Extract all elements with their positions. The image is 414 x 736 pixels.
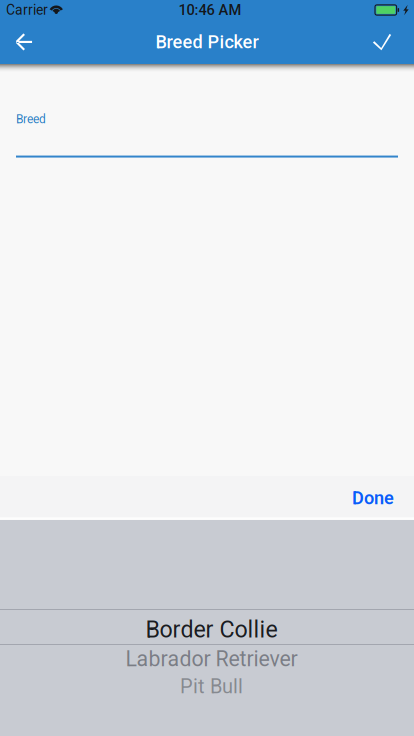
button[interactable]: Done <box>337 476 409 520</box>
button[interactable]: Pit Bull <box>0 673 414 699</box>
staticText: Carrier <box>6 2 48 18</box>
staticText: 10:46 AM <box>178 1 241 19</box>
staticText: Pit Bull <box>180 675 243 698</box>
staticText: Labrador Retriever <box>125 646 297 671</box>
staticText: Breed Picker <box>155 31 258 53</box>
staticText: Border Collie <box>145 616 277 643</box>
button[interactable]: Labrador Retriever <box>0 644 414 673</box>
button[interactable]: Save <box>358 20 406 64</box>
staticText: Done <box>352 487 394 509</box>
button[interactable]: Breed <box>0 64 414 476</box>
button[interactable]: Border Collie <box>0 614 414 644</box>
staticText: Breed <box>16 112 46 126</box>
button[interactable]: Back <box>0 20 48 64</box>
